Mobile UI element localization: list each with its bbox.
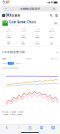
staticText: 换手 <box>36 41 38 43</box>
button[interactable]: 关注 <box>53 22 58 24</box>
staticText: 0.016 <box>1 74 5 76</box>
staticText: 中长线走势分析 <box>4 50 25 54</box>
button[interactable]: Menu <box>55 14 58 17</box>
staticText: 成交量 <box>7 35 10 36</box>
staticText: 近 180 日 <box>26 58 31 60</box>
staticText: 0.012 <box>1 82 5 84</box>
staticText: 注:图表仅供参考,不构成任何投资建议。 <box>2 67 19 69</box>
button[interactable]: K <box>2 14 20 17</box>
staticText: 10.0B <box>21 43 25 45</box>
staticText: 排名 <box>51 35 53 36</box>
staticText: 市值 <box>36 35 38 36</box>
staticText: 成交额 <box>21 35 24 36</box>
button[interactable]: Share <box>24 126 36 129</box>
button[interactable]: Forward <box>13 126 24 129</box>
staticText: 05-22 <box>54 108 58 110</box>
staticText: 04-06 <box>38 108 42 110</box>
staticText: +5.2% <box>21 30 25 32</box>
staticText: 置信度 78% <box>15 62 21 64</box>
button[interactable]: Reload <box>52 8 56 10</box>
button[interactable]: Tabs <box>47 126 59 129</box>
button[interactable]: Search <box>50 14 53 17</box>
staticText: 4.2K <box>50 43 53 45</box>
staticText: OKX交易所 <box>6 14 21 17</box>
staticText: 24h高 <box>35 28 39 30</box>
staticText: 98.2M <box>35 37 39 38</box>
staticText: 当前阶段 <box>2 63 6 64</box>
staticText: Cash Survive Chain <box>9 20 36 24</box>
staticText: 趋势线 <box>20 111 23 113</box>
staticText: 流通量 <box>7 41 10 43</box>
staticText: CSC · $0.01328 <box>9 24 19 26</box>
staticText: 1.82M <box>21 37 25 38</box>
staticText: 50 <box>3 100 5 102</box>
staticText: 25 <box>3 106 5 107</box>
staticText: 持仓 <box>51 41 53 43</box>
staticText: 9:41 <box>3 1 10 4</box>
staticText: 100 <box>2 88 5 90</box>
staticText: 24h涨跌 <box>20 28 25 30</box>
staticText: www.okx.com <box>22 7 39 10</box>
staticText: AA <box>5 8 7 10</box>
button[interactable]: Back <box>1 126 13 129</box>
staticText: 0.0132 <box>6 30 11 32</box>
staticText: 机构持仓 <box>4 114 8 115</box>
staticText: #412 <box>50 37 54 38</box>
staticText: 更新于 06-18 <box>51 58 58 60</box>
staticText: 总量 <box>22 41 24 43</box>
staticText: 2.31% <box>35 43 39 45</box>
button[interactable]: 更多 › <box>56 51 58 53</box>
staticText: 价格 <box>7 28 9 30</box>
staticText: 01-05 <box>6 108 10 110</box>
staticText: 02-20 <box>22 108 26 110</box>
staticText: 散户资金 <box>12 111 16 113</box>
staticText: 0.0140 <box>35 30 40 32</box>
staticText: 净流入 <box>19 114 22 115</box>
staticText: 关注 <box>55 22 57 24</box>
button[interactable]: 上升趋势 <box>8 62 14 65</box>
staticText: 更多 › <box>56 51 58 53</box>
staticText: 数据周期 <box>2 58 6 60</box>
staticText: 主力资金 <box>4 111 8 113</box>
button[interactable]: Bookmarks <box>36 126 47 129</box>
staticText: 上升趋势 <box>9 63 13 64</box>
button[interactable]: Page settings <box>4 8 8 10</box>
staticText: 0.0118 <box>49 30 54 32</box>
staticText: 7.4B <box>7 43 10 45</box>
staticText: 换手率 <box>12 114 15 115</box>
staticText: 0.010 <box>1 86 5 88</box>
staticText: 24h低 <box>50 28 54 30</box>
staticText: 12.4M <box>6 37 10 38</box>
